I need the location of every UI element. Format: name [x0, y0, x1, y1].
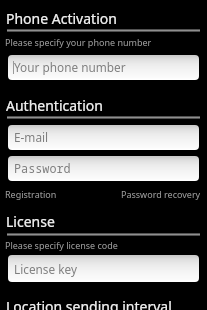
button[interactable]: License key: [8, 255, 199, 282]
staticText: Phone Activation: [6, 9, 117, 28]
staticText: Please specify license code: [5, 239, 118, 251]
button[interactable]: Your phone number: [8, 55, 199, 80]
staticText: Authentication: [6, 96, 103, 115]
staticText: License: [6, 212, 55, 231]
staticText: Location sending interval: [6, 297, 172, 310]
staticText: Password: [14, 160, 71, 176]
staticText: E-mail: [14, 129, 49, 145]
button[interactable]: Registration: [5, 188, 57, 200]
staticText: Your phone number: [14, 59, 126, 75]
staticText: Please specify your phone number: [5, 36, 152, 48]
button[interactable]: Password: [8, 156, 199, 181]
button[interactable]: Password recovery: [121, 188, 201, 200]
button[interactable]: E-mail: [8, 125, 199, 150]
staticText: License key: [14, 261, 77, 277]
